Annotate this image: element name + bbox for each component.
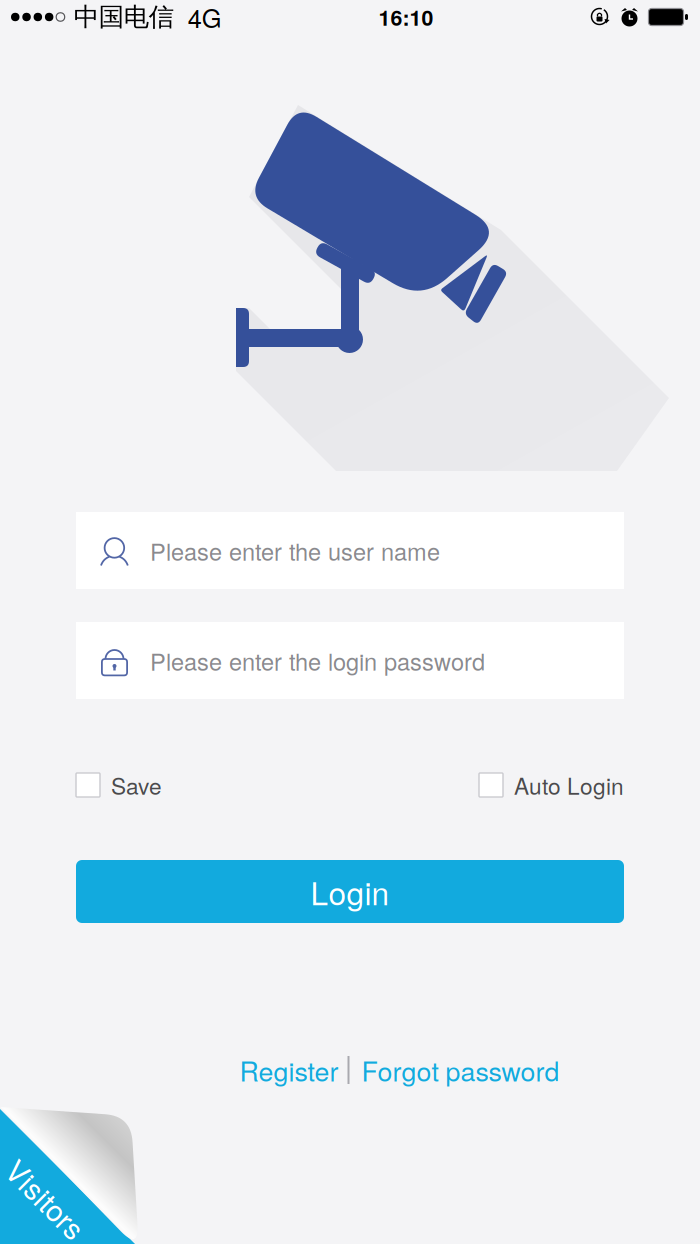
staticText: Please enter the login password — [150, 644, 485, 677]
button[interactable]: Save — [76, 773, 162, 797]
button[interactable]: Register — [98, 1050, 347, 1090]
button[interactable]: Login — [76, 860, 624, 923]
staticText: Please enter the user name — [150, 534, 440, 567]
button[interactable]: Auto Login — [479, 773, 624, 797]
button[interactable]: Forgot password — [349, 1050, 601, 1090]
staticText: Auto Login — [514, 769, 624, 801]
button[interactable]: Please enter the login password — [76, 622, 624, 699]
staticText: 4G — [188, 0, 222, 35]
staticText: Register — [239, 1051, 338, 1089]
staticText: Visitors — [0, 1178, 95, 1220]
button[interactable]: Visitors — [0, 1105, 140, 1244]
staticText: Forgot password — [361, 1051, 559, 1089]
button[interactable]: Please enter the user name — [76, 512, 624, 589]
staticText: 16:10 — [379, 2, 434, 32]
staticText: 中国电信 — [74, 1, 174, 33]
staticText: Login — [310, 869, 389, 914]
staticText: Save — [111, 769, 162, 801]
